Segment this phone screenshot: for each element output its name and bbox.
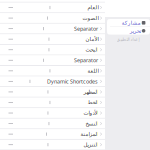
staticText: النسخ [85,120,98,127]
button[interactable]: الصوت [0,13,105,24]
button[interactable]: الأمان [0,34,105,45]
button[interactable]: Separator [0,24,105,34]
staticText: تحرير [129,28,140,34]
button[interactable]: Separator [0,55,105,66]
button[interactable]: المزامنة [0,129,105,140]
button[interactable]: تحرير [107,27,150,35]
staticText: المظهر [83,89,98,95]
staticText: Separator [74,25,98,32]
staticText: المزامنة [80,131,98,137]
staticText: الصوت [82,15,98,21]
button[interactable]: الخط [0,98,105,108]
staticText: الأمان [85,36,98,42]
staticText: Dynamic Shortcodes [47,78,98,85]
button[interactable]: العام [0,3,105,13]
button[interactable]: التنزيل [0,140,105,150]
staticText: اللغة [87,68,98,74]
button[interactable]: مشاركة [107,19,150,27]
button[interactable]: المظهر [0,87,105,98]
staticText: Separator [74,57,98,64]
button[interactable]: النسخ [0,119,105,129]
staticText: العام [87,4,98,11]
staticText: الخط [87,99,98,106]
staticText: مشاركة [121,20,140,26]
button[interactable]: Dynamic Shortcodes [0,76,105,87]
button[interactable]: البحث [0,45,105,55]
staticText: الأدوات [83,110,98,116]
staticText: التنزيل [83,142,98,148]
button[interactable]: الأدوات [0,108,105,119]
staticText: البحث [85,47,98,53]
button[interactable]: اللغة [0,66,105,77]
staticText: إعداد التطبيق [116,37,139,42]
